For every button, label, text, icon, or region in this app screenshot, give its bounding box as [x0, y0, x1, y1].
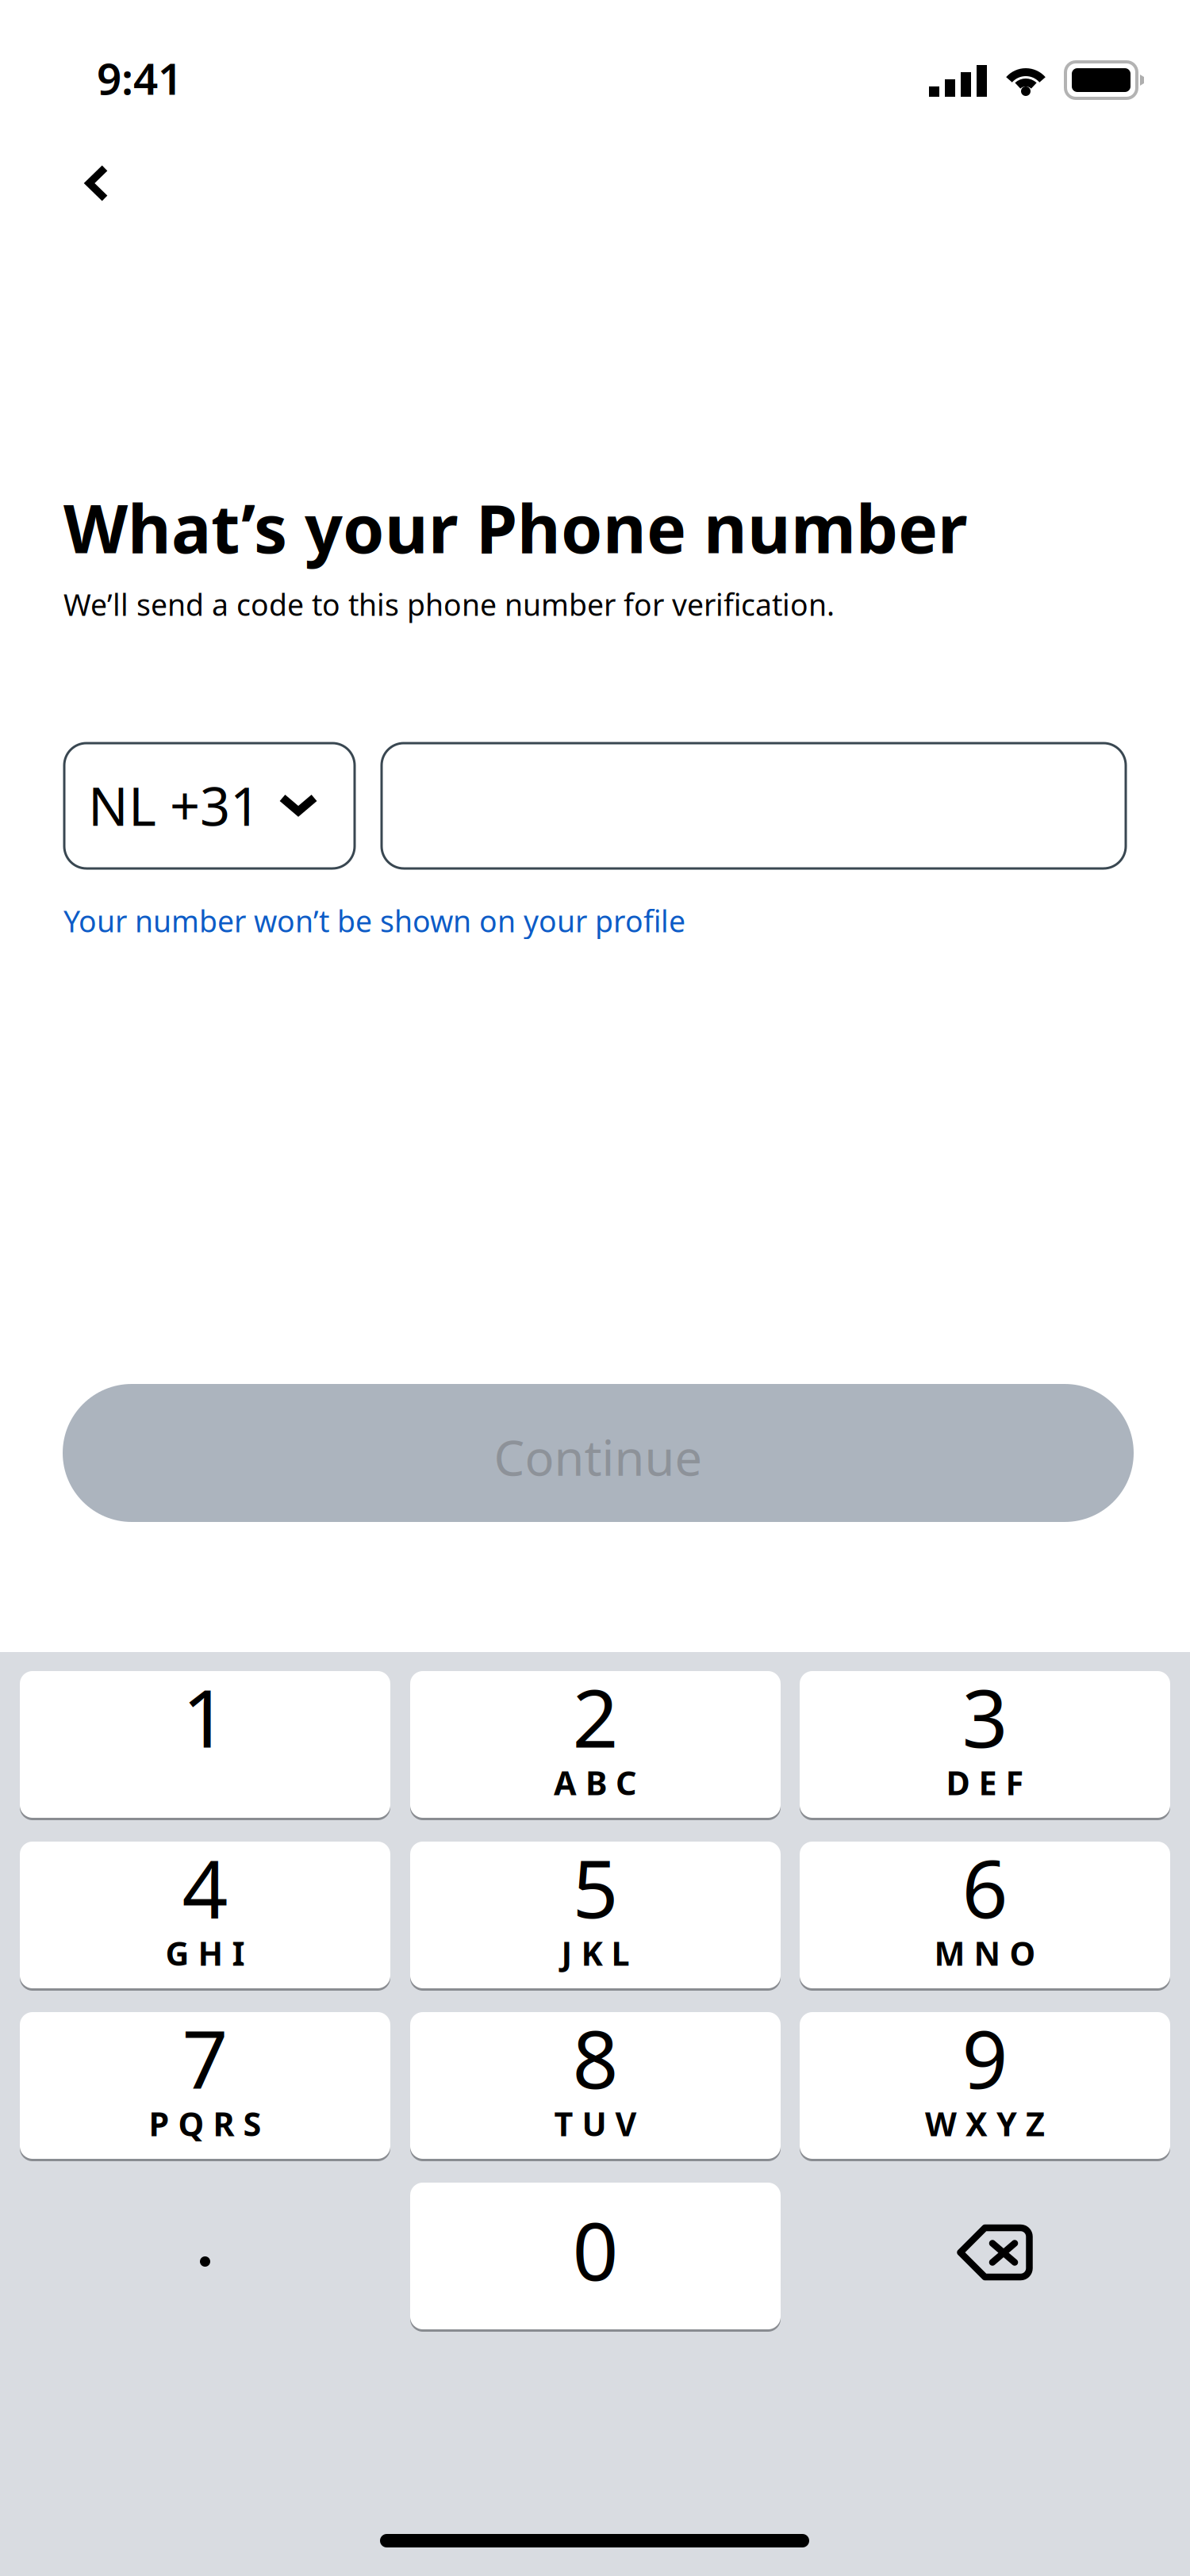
staticText: W X Y Z	[925, 2102, 1045, 2145]
staticText: 9	[962, 2004, 1008, 2111]
staticText: A B C	[554, 1761, 637, 1804]
staticText: Continue	[494, 1425, 702, 1489]
button[interactable]: 8	[410, 2012, 781, 2161]
staticText: 8	[572, 2004, 618, 2111]
button[interactable]: Delete	[800, 2183, 1170, 2329]
button[interactable]: 9	[800, 2012, 1170, 2161]
button[interactable]: 0	[410, 2183, 781, 2332]
staticText: 7	[182, 2004, 228, 2111]
staticText: 3	[962, 1663, 1008, 1770]
staticText: What’s your Phone number	[63, 483, 968, 572]
staticText: G H I	[165, 1931, 245, 1975]
staticText: 2	[572, 1663, 618, 1770]
button[interactable]: NL +31	[64, 743, 355, 868]
staticText: 9:41	[97, 49, 182, 107]
button[interactable]: 1	[20, 1671, 390, 1820]
staticText: 4	[182, 1834, 228, 1940]
button[interactable]: Back	[57, 144, 136, 223]
staticText: J K L	[561, 1931, 630, 1975]
button[interactable]: 7	[20, 2012, 390, 2161]
staticText: Your number won’t be shown on your profi…	[63, 901, 685, 940]
staticText: P Q R S	[149, 2102, 261, 2145]
staticText: M N O	[934, 1931, 1036, 1975]
button[interactable]: 4	[20, 1842, 390, 1991]
staticText: 5	[572, 1834, 618, 1940]
button[interactable]: Phone number	[382, 743, 1126, 868]
staticText: 1	[182, 1663, 228, 1770]
staticText: 0	[572, 2196, 618, 2303]
staticText: D E F	[946, 1761, 1024, 1804]
button[interactable]: 6	[800, 1842, 1170, 1991]
staticText: T U V	[554, 2102, 637, 2145]
button[interactable]: Period	[20, 2183, 390, 2329]
button[interactable]: 5	[410, 1842, 781, 1991]
staticText: We’ll send a code to this phone number f…	[63, 585, 835, 624]
staticText: NL +31	[88, 770, 260, 840]
staticText: 6	[962, 1834, 1008, 1940]
button[interactable]: Continue	[63, 1384, 1134, 1522]
button[interactable]: 2	[410, 1671, 781, 1820]
button[interactable]: 3	[800, 1671, 1170, 1820]
